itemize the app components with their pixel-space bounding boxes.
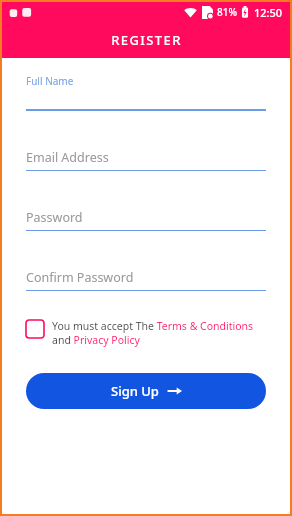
staticText: Confirm Password [26,269,134,286]
button[interactable]: Full Name [26,74,266,111]
staticText: 81% [217,5,237,19]
staticText: Password [26,209,83,226]
staticText: You must accept The Terms & Conditions a… [52,319,266,347]
staticText: REGISTER [111,31,182,49]
staticText: 12:50 [254,5,283,20]
other: Accept terms checkbox [26,320,44,338]
button[interactable]: Confirm Password [26,269,266,291]
button[interactable]: Sign Up [26,373,266,409]
button[interactable]: Password [26,209,266,231]
staticText: Full Name [26,74,74,88]
staticText: Email Address [26,149,109,166]
button[interactable]: Accept terms checkbox [26,319,266,347]
staticText: Sign Up [111,382,159,400]
button[interactable]: Email Address [26,149,266,171]
